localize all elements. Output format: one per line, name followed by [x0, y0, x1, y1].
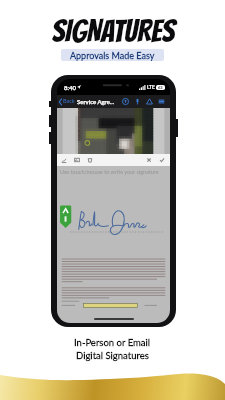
- staticText: Back: [63, 98, 75, 105]
- staticText: 8:40: [64, 84, 76, 91]
- button[interactable]: Menu: [155, 95, 167, 108]
- staticText: LTE: [147, 84, 155, 90]
- button[interactable]: Warning: [143, 95, 155, 108]
- staticText: Digital Signatures: [76, 350, 149, 361]
- button[interactable]: Delete: [86, 156, 94, 164]
- button[interactable]: Confirm: [158, 156, 166, 164]
- staticText: 63: [158, 85, 163, 90]
- button[interactable]: Signature: [60, 156, 68, 164]
- button[interactable]: Upload: [119, 95, 131, 108]
- staticText: Use touch/mouse to write your signature: [60, 169, 159, 176]
- button[interactable]: Image: [73, 156, 81, 164]
- button[interactable]: Back: [57, 98, 76, 105]
- staticText: Approvals Made Easy: [70, 50, 155, 61]
- button[interactable]: Cancel: [145, 156, 153, 164]
- staticText: SIGNATURES: [51, 15, 175, 48]
- staticText: In-Person or Email: [74, 337, 151, 348]
- staticText: Service Agre...: [77, 98, 115, 105]
- button[interactable]: Info: [131, 95, 143, 108]
